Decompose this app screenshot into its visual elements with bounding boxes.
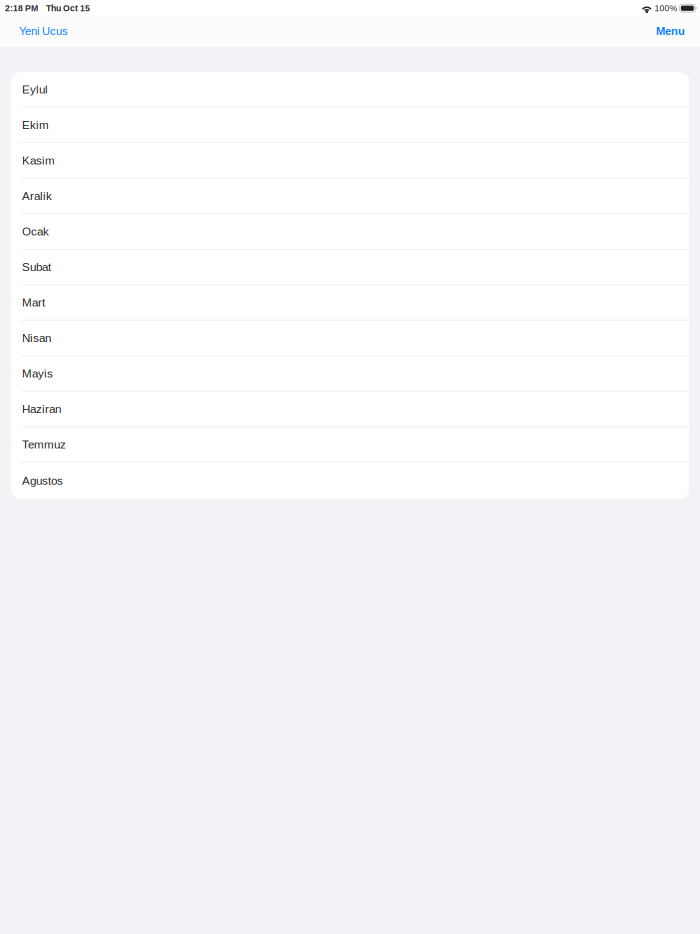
button[interactable]: Haziran	[11, 392, 689, 427]
button[interactable]: Mayis	[11, 356, 689, 392]
button[interactable]: Nisan	[11, 321, 689, 356]
staticText: Thu Oct 15	[46, 3, 90, 13]
button[interactable]: Aralik	[11, 179, 689, 214]
staticText: Nisan	[22, 331, 51, 344]
button[interactable]: Menu	[650, 18, 691, 44]
button[interactable]: Yeni Ucus	[13, 18, 74, 44]
button[interactable]: Kasim	[11, 143, 689, 179]
button[interactable]: Agustos	[11, 463, 689, 499]
staticText: Menu	[656, 25, 685, 37]
button[interactable]: Eylul	[11, 72, 689, 108]
staticText: Subat	[22, 260, 51, 273]
staticText: Mayis	[22, 367, 53, 380]
staticText: Aralik	[22, 189, 52, 202]
staticText: Kasim	[22, 154, 55, 167]
staticText: Eylul	[22, 83, 48, 96]
staticText: Mart	[22, 296, 45, 309]
button[interactable]: Temmuz	[11, 427, 689, 463]
staticText: 2:18 PM	[5, 3, 38, 13]
staticText: Ekim	[22, 118, 49, 131]
button[interactable]: Ocak	[11, 214, 689, 250]
staticText: Agustos	[22, 474, 63, 487]
staticText: Ocak	[22, 225, 49, 238]
button[interactable]: Ekim	[11, 108, 689, 143]
staticText: Temmuz	[22, 438, 66, 451]
staticText: 100%	[655, 3, 678, 13]
staticText: Yeni Ucus	[19, 25, 68, 37]
staticText: Haziran	[22, 402, 61, 415]
button[interactable]: Subat	[11, 250, 689, 285]
button[interactable]: Mart	[11, 285, 689, 321]
